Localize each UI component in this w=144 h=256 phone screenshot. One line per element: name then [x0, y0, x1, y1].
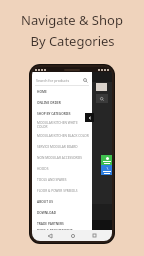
- staticText: SERVICE MODULAR BOARD: [37, 145, 78, 149]
- button[interactable]: Call now: [101, 165, 112, 175]
- button[interactable]: FLOOR & POWER SYMBOLS: [32, 185, 92, 196]
- staticText: By Categories: [30, 32, 115, 50]
- button[interactable]: MODULAR KITCHEN WHITE COLOR: [32, 119, 92, 130]
- button[interactable]: Recent apps: [90, 231, 99, 240]
- button[interactable]: Home: [68, 231, 77, 240]
- button[interactable]: TRADE PARTNERS: [32, 218, 92, 229]
- button[interactable]: TOOLS AND SPARES: [32, 174, 92, 185]
- button[interactable]: NON MODULAR ACCESSORIES: [32, 152, 92, 163]
- staticText: HOME: [37, 90, 47, 94]
- staticText: Navigate & Shop: [21, 11, 123, 29]
- staticText: DOWNLOAD: [37, 211, 56, 215]
- button[interactable]: RAISE A REQUIREMENT: [32, 229, 92, 230]
- staticText: FLOOR & POWER SYMBOLS: [37, 189, 78, 193]
- button[interactable]: ONLINE ORDER: [32, 97, 92, 108]
- button[interactable]: DOWNLOAD: [32, 207, 92, 218]
- button[interactable]: WhatsApp us: [101, 155, 112, 165]
- button[interactable]: Close menu: [85, 113, 94, 122]
- button[interactable]: Search for products: [36, 75, 88, 85]
- button[interactable]: HOME: [32, 86, 92, 97]
- button[interactable]: MODULAR KITCHEN BLACK COLOR: [32, 130, 92, 141]
- staticText: ABOUT US: [37, 200, 53, 204]
- staticText: TRADE PARTNERS: [37, 222, 64, 226]
- staticText: Search for products: [36, 78, 83, 83]
- staticText: NON MODULAR ACCESSORIES: [37, 156, 83, 160]
- button[interactable]: ABOUT US: [32, 196, 92, 207]
- other: Search: [83, 78, 88, 83]
- staticText: MODULAR KITCHEN WHITE COLOR: [37, 121, 89, 129]
- staticText: ONLINE ORDER: [37, 101, 61, 105]
- staticText: SHOP BY CATEGORIES: [37, 112, 71, 116]
- button[interactable]: Back: [45, 231, 54, 240]
- staticText: HOODS: [37, 167, 49, 171]
- button[interactable]: SHOP BY CATEGORIES: [32, 108, 92, 119]
- staticText: TOOLS AND SPARES: [37, 178, 67, 182]
- button[interactable]: HOODS: [32, 163, 92, 174]
- staticText: MODULAR KITCHEN BLACK COLOR: [37, 134, 89, 138]
- button[interactable]: SERVICE MODULAR BOARD: [32, 141, 92, 152]
- staticText: RAISE A REQUIREMENT: [37, 229, 73, 230]
